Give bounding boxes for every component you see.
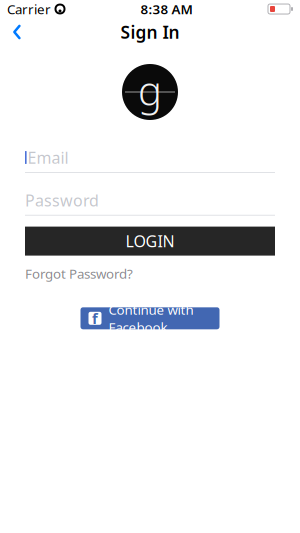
staticText: Email: [28, 147, 69, 168]
staticText: Sign In: [120, 20, 179, 43]
button[interactable]: LOGIN: [25, 227, 275, 256]
staticText: f: [92, 309, 98, 328]
staticText: Carrier: [7, 0, 51, 18]
button[interactable]: f: [80, 307, 219, 329]
staticText: 8:38 AM: [140, 0, 192, 18]
staticText: g: [138, 63, 162, 116]
button[interactable]: Email: [25, 148, 275, 173]
button[interactable]: Forgot Password?: [25, 265, 133, 282]
staticText: LOGIN: [125, 230, 174, 252]
button[interactable]: Back: [3, 18, 31, 46]
staticText: Continue with Facebook: [108, 301, 193, 336]
button[interactable]: Password: [25, 191, 275, 216]
staticText: Password: [25, 190, 99, 211]
staticText: Forgot Password?: [25, 265, 133, 282]
